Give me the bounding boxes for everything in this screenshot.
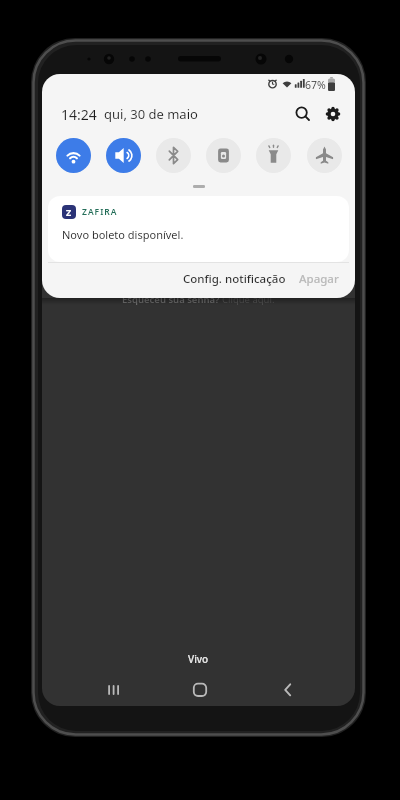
button[interactable]	[272, 671, 304, 706]
button[interactable]	[291, 102, 315, 126]
button[interactable]	[184, 671, 216, 706]
staticText: Novo boleto disponível.	[62, 227, 184, 242]
button[interactable]	[97, 671, 129, 706]
button[interactable]	[256, 138, 291, 173]
button[interactable]: Vivo	[42, 650, 355, 667]
staticText: 67%	[305, 78, 326, 92]
button[interactable]	[106, 138, 141, 173]
staticText: Apagar	[299, 271, 339, 287]
staticText: Vivo	[188, 652, 209, 666]
button[interactable]	[321, 102, 345, 126]
staticText: 14:24	[61, 105, 97, 124]
button[interactable]: Apagar	[289, 270, 349, 287]
staticText: Config. notificação	[183, 271, 286, 287]
button[interactable]	[56, 138, 91, 173]
staticText: qui, 30 de maio	[104, 105, 198, 123]
button[interactable]	[206, 138, 241, 173]
button[interactable]	[307, 138, 342, 173]
button[interactable]: Esqueceu sua senha?	[42, 291, 355, 307]
staticText: Clique aqui.	[222, 293, 275, 306]
button[interactable]: Config. notificação	[164, 270, 304, 287]
staticText: Z	[66, 206, 72, 218]
staticText: Esqueceu sua senha?	[122, 293, 222, 306]
staticText: ZAFIRA	[82, 206, 118, 218]
button[interactable]	[156, 138, 191, 173]
button[interactable]: Z	[48, 196, 349, 262]
